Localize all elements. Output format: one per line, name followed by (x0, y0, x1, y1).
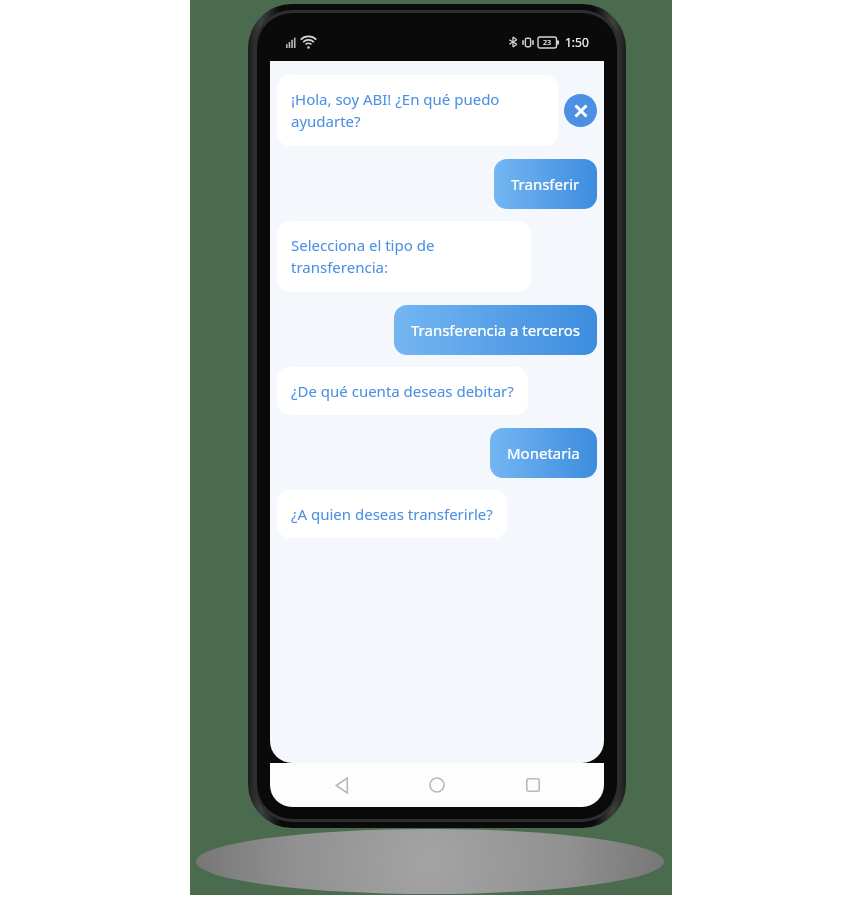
button[interactable]: Selecciona el tipo de transferencia: (277, 221, 531, 292)
staticText: Transferir (511, 174, 580, 194)
button[interactable]: Cerrar (564, 94, 597, 127)
button[interactable]: ¿De qué cuenta deseas debitar? (277, 367, 528, 415)
staticText: 23 (543, 38, 552, 48)
button[interactable]: ¡Hola, soy ABI! ¿En qué puedo ayudarte? (277, 75, 558, 146)
button[interactable]: Transferencia a terceros (394, 305, 597, 355)
button[interactable]: Atrás (318, 763, 366, 807)
button[interactable]: ¿A quien deseas transferirle? (277, 490, 507, 538)
staticText: ¿De qué cuenta deseas debitar? (291, 381, 514, 401)
button[interactable]: Recientes (509, 763, 557, 807)
staticText: 1:50 (565, 34, 589, 50)
staticText: Transferencia a terceros (411, 320, 580, 340)
button[interactable]: Monetaria (490, 428, 597, 478)
button[interactable]: Inicio (413, 763, 461, 807)
staticText: ¿A quien deseas transferirle? (291, 504, 493, 524)
staticText: Selecciona el tipo de transferencia: (291, 235, 517, 278)
button[interactable]: Transferir (494, 159, 597, 209)
staticText: ¡Hola, soy ABI! ¿En qué puedo ayudarte? (291, 89, 544, 132)
staticText: Monetaria (507, 443, 580, 463)
